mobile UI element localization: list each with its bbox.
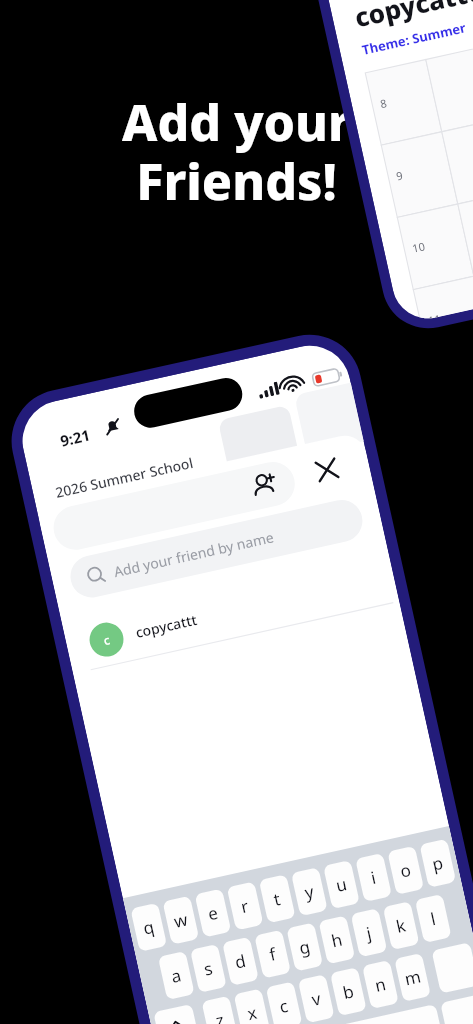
button[interactable]: Add your Friends promotional screen bbox=[0, 0, 473, 1024]
